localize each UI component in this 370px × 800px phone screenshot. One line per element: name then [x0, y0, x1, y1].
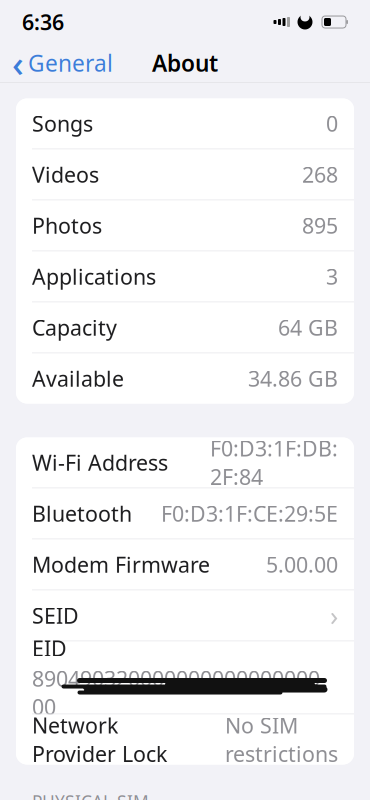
- staticText: About: [152, 48, 218, 78]
- button[interactable]: ‹: [0, 44, 125, 82]
- staticText: EID: [32, 634, 67, 662]
- staticText: 64 GB: [278, 313, 338, 342]
- staticText: ‹: [12, 39, 24, 87]
- button[interactable]: Songs: [16, 98, 354, 148]
- button[interactable]: SEID: [16, 590, 354, 640]
- button[interactable]: Network Provider Lock: [16, 714, 354, 764]
- button[interactable]: Available: [16, 353, 354, 403]
- staticText: 3: [326, 262, 338, 291]
- button[interactable]: Applications: [16, 251, 354, 301]
- staticText: Modem Firmware: [32, 550, 210, 579]
- staticText: Capacity: [32, 313, 117, 342]
- staticText: Videos: [32, 160, 99, 189]
- staticText: Bluetooth: [32, 499, 132, 528]
- staticText: PHYSICAL SIM: [32, 790, 149, 800]
- staticText: F0:D3:1F:CE:29:5E: [161, 499, 338, 528]
- staticText: Photos: [32, 211, 102, 240]
- staticText: 6:36: [22, 8, 64, 36]
- staticText: ›: [330, 598, 338, 633]
- button[interactable]: Modem Firmware: [16, 539, 354, 589]
- staticText: 5.00.00: [266, 550, 338, 579]
- staticText: Available: [32, 364, 124, 393]
- staticText: 34.86 GB: [248, 364, 338, 393]
- button[interactable]: EID: [16, 641, 354, 713]
- staticText: F0:D3:1F:DB:2F:84: [210, 434, 338, 491]
- button[interactable]: Bluetooth: [16, 488, 354, 538]
- button[interactable]: Videos: [16, 149, 354, 199]
- staticText: 895: [302, 211, 338, 240]
- button[interactable]: Wi-Fi Address: [16, 437, 354, 487]
- staticText: 0: [326, 109, 338, 138]
- staticText: Applications: [32, 262, 156, 291]
- staticText: No SIM restrictions: [225, 711, 338, 768]
- staticText: 268: [302, 160, 338, 189]
- staticText: Wi-Fi Address: [32, 448, 168, 477]
- staticText: Network Provider Lock: [32, 711, 167, 768]
- staticText: SEID: [32, 601, 79, 630]
- button[interactable]: Capacity: [16, 302, 354, 352]
- button[interactable]: Photos: [16, 200, 354, 250]
- staticText: Songs: [32, 109, 93, 138]
- staticText: General: [28, 48, 113, 78]
- staticText: 89049032000000000000000000: [32, 664, 320, 721]
